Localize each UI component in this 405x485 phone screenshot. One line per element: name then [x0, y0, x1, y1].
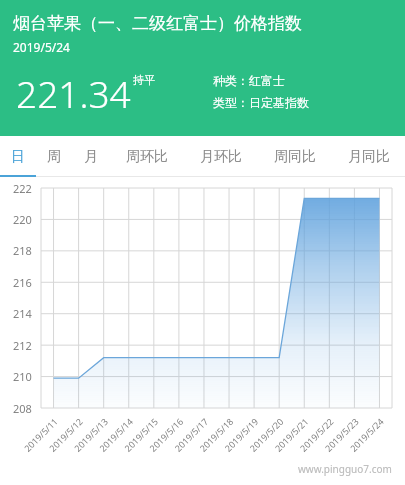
staticText: 月环比: [200, 148, 242, 166]
staticText: 周: [47, 148, 61, 166]
button[interactable]: 月环比: [184, 136, 258, 177]
staticText: 周环比: [126, 148, 168, 166]
staticText: 类型：日定基指数: [213, 95, 309, 110]
staticText: 种类：红富士: [213, 73, 285, 88]
staticText: 月: [84, 148, 98, 166]
staticText: 烟台苹果（一、二级红富士）价格指数: [13, 13, 302, 34]
staticText: 持平: [133, 73, 155, 87]
button[interactable]: 周: [36, 136, 72, 177]
staticText: 周同比: [274, 148, 316, 166]
button[interactable]: 周环比: [110, 136, 184, 177]
staticText: 2019/5/24: [13, 39, 70, 55]
button[interactable]: 日: [0, 136, 36, 177]
staticText: 月同比: [348, 148, 390, 166]
button[interactable]: 月: [72, 136, 110, 177]
button[interactable]: 月同比: [332, 136, 405, 177]
button[interactable]: 周同比: [258, 136, 332, 177]
staticText: 221.34: [16, 68, 131, 118]
staticText: 日: [11, 148, 25, 166]
